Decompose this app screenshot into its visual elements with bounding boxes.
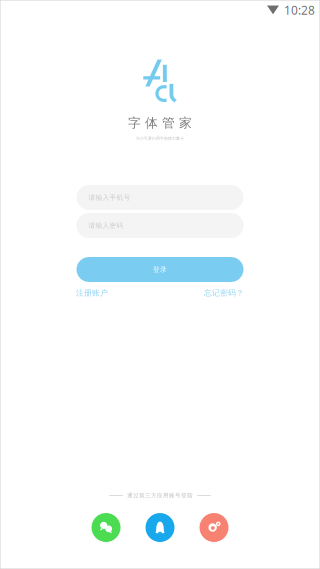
staticText: 为小可爱们用字热情力量斗 bbox=[136, 136, 184, 141]
button[interactable]: 请输入密码 bbox=[76, 213, 243, 238]
button[interactable]: 忘记密码？ bbox=[204, 288, 244, 298]
staticText: 字 体 管 家 bbox=[128, 115, 192, 131]
button[interactable]: 注册账户 bbox=[76, 288, 108, 298]
staticText: 登录 bbox=[153, 265, 167, 274]
staticText: 10:28 bbox=[284, 2, 315, 18]
staticText: 通过第三方应用账号登陆 bbox=[127, 492, 193, 499]
button[interactable]: WeChat bbox=[91, 513, 120, 542]
button[interactable]: 登录 bbox=[76, 257, 243, 282]
staticText: 请输入手机号 bbox=[88, 193, 130, 202]
staticText: 忘记密码？ bbox=[204, 288, 244, 298]
staticText: 注册账户 bbox=[76, 288, 108, 298]
button[interactable]: 请输入手机号 bbox=[76, 185, 243, 210]
staticText: 请输入密码 bbox=[88, 221, 123, 230]
button[interactable]: QQ bbox=[145, 513, 174, 542]
button[interactable]: Weibo bbox=[199, 513, 228, 542]
